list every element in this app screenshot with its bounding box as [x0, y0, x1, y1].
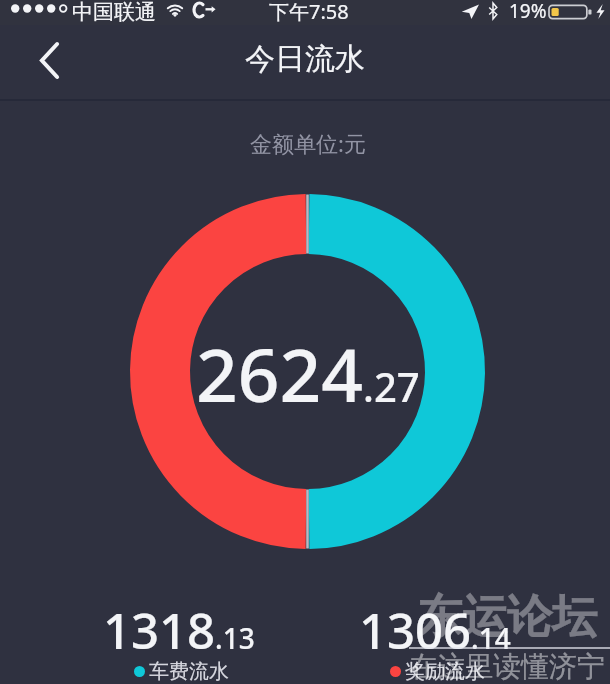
staticText: 在这里读懂济宁 — [409, 649, 605, 684]
staticText: 下午7:58 — [269, 0, 349, 23]
staticText: 东运论坛 — [417, 589, 597, 646]
staticText: 1306.14 — [359, 597, 511, 664]
staticText: 金额单位:元 — [250, 128, 366, 156]
button[interactable]: 1318.13 — [69, 597, 289, 684]
staticText: 中国联通 — [72, 0, 156, 24]
staticText: 今日流水 — [245, 40, 365, 78]
staticText: 2624.27 — [196, 324, 420, 423]
staticText: 19% — [509, 0, 547, 23]
staticText: 车费流水 — [149, 659, 229, 684]
staticText: 1318.13 — [103, 597, 255, 664]
button[interactable]: Back — [17, 28, 81, 92]
staticText: 奖励流水 — [405, 659, 485, 684]
button[interactable]: 1306.14 — [325, 597, 545, 684]
